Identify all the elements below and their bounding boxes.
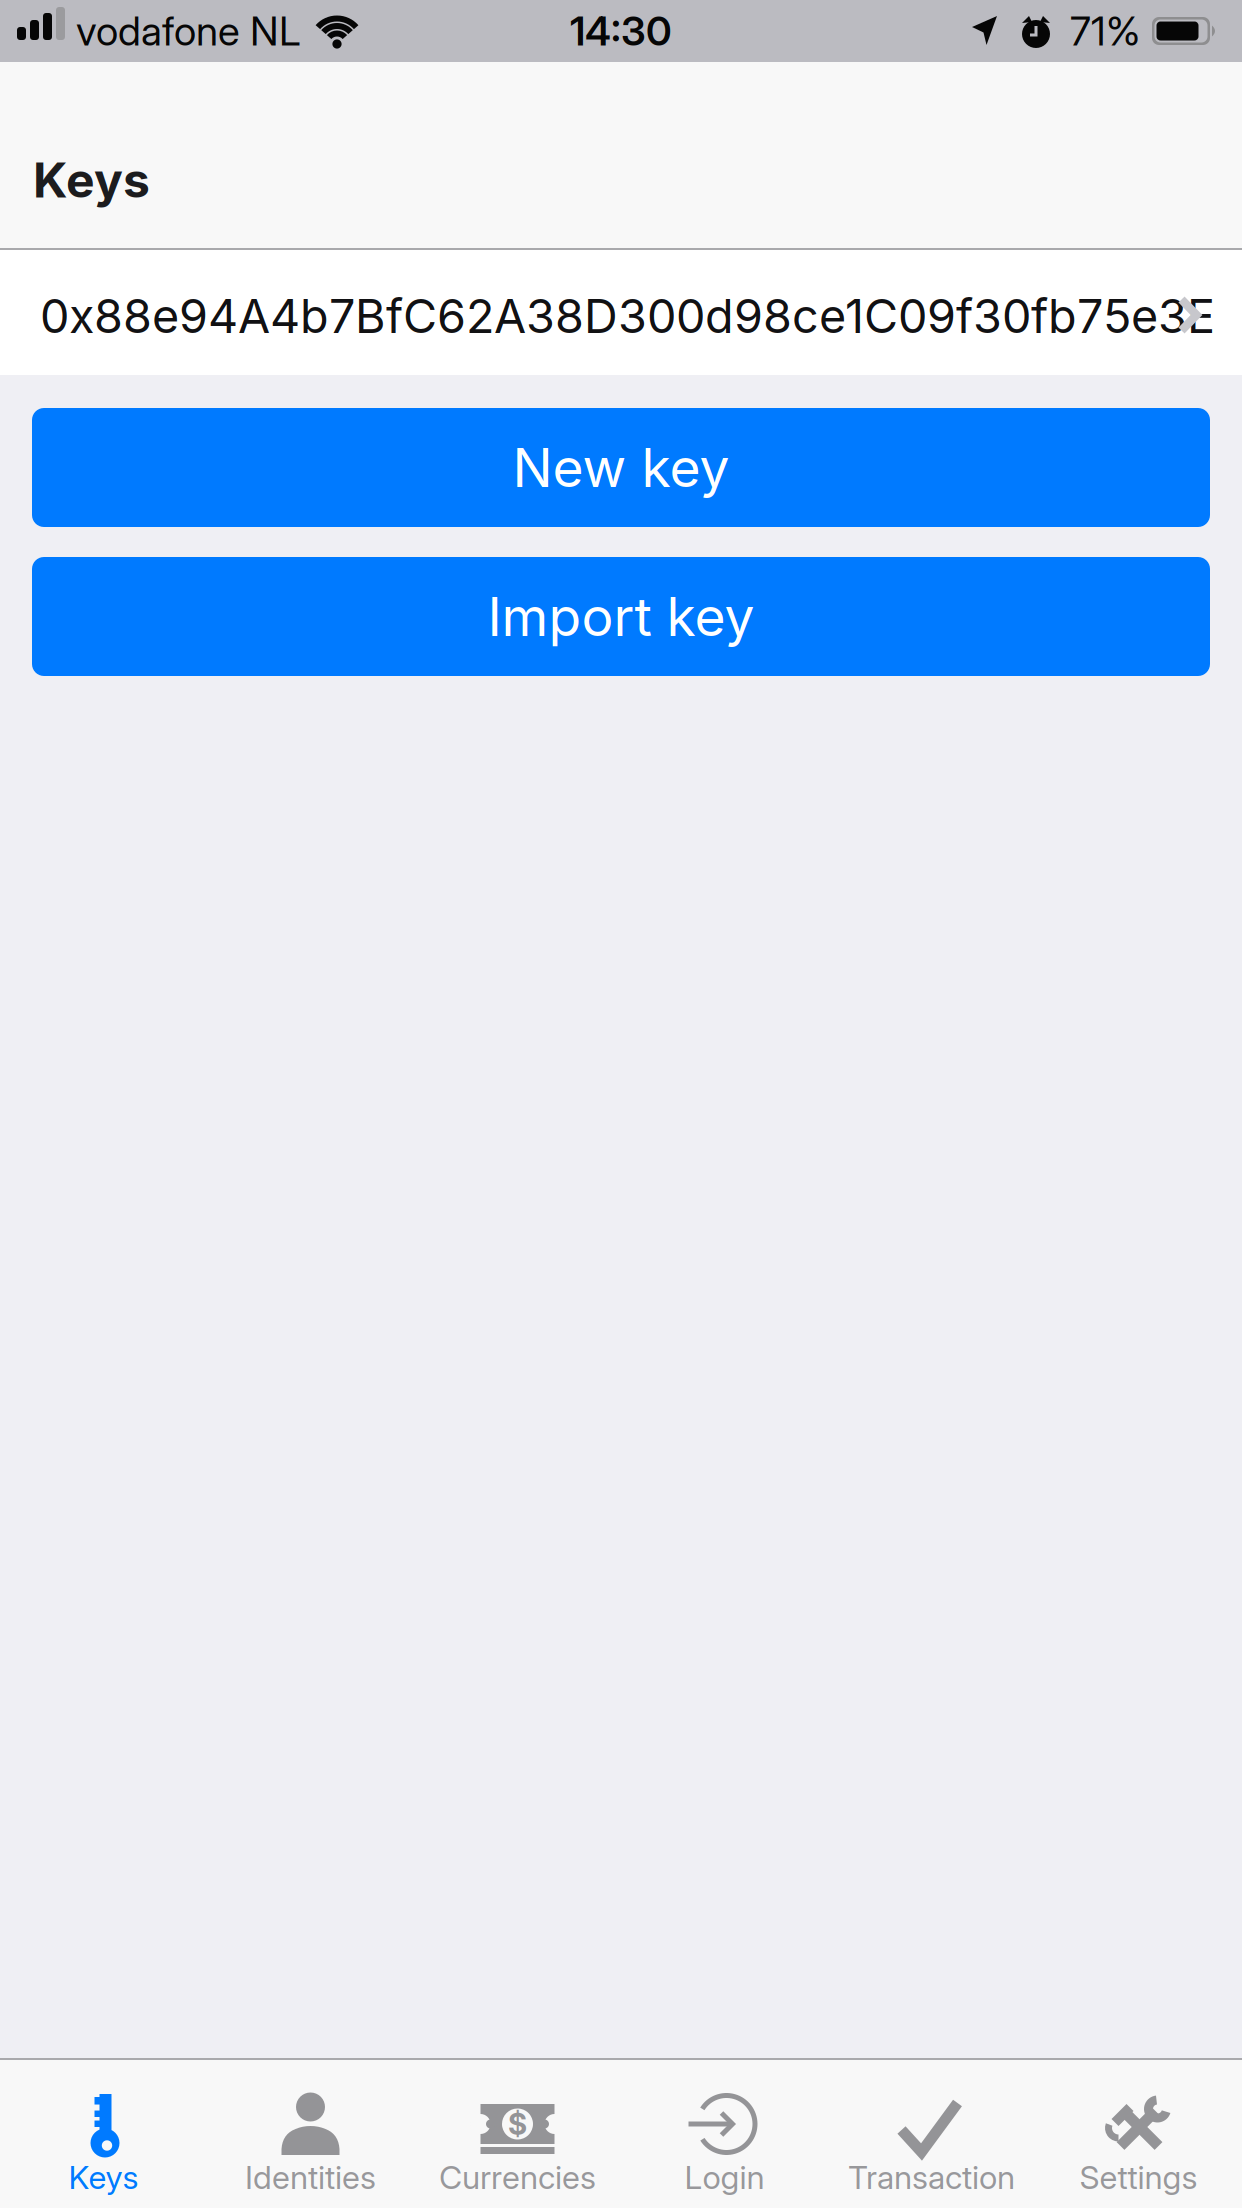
button[interactable]: Keys bbox=[0, 2060, 207, 2208]
button[interactable]: New key bbox=[32, 408, 1210, 527]
staticText: 71% bbox=[1070, 7, 1140, 55]
button[interactable]: Identities bbox=[207, 2060, 414, 2208]
staticText: Import key bbox=[487, 584, 754, 649]
button[interactable]: Transaction bbox=[828, 2060, 1035, 2208]
button[interactable]: 0x88e94A4b7BfC62A38D300d98ce1C09f30fb75e… bbox=[0, 284, 1242, 341]
staticText: vodafone NL bbox=[76, 7, 301, 55]
staticText: 0x88e94A4b7BfC62A38D300d98ce1C09f30fb75e… bbox=[40, 288, 1215, 344]
staticText: 14:30 bbox=[570, 7, 672, 55]
button[interactable]: Settings bbox=[1035, 2060, 1242, 2208]
button[interactable]: Import key bbox=[32, 557, 1210, 676]
staticText: Transaction bbox=[848, 2158, 1015, 2197]
button[interactable]: $ bbox=[414, 2060, 621, 2208]
staticText: Currencies bbox=[439, 2158, 596, 2197]
staticText: Keys bbox=[68, 2158, 138, 2197]
staticText: Identities bbox=[245, 2158, 376, 2197]
button[interactable]: Login bbox=[621, 2060, 828, 2208]
staticText: Keys bbox=[33, 151, 150, 209]
staticText: Settings bbox=[1079, 2158, 1197, 2197]
staticText: New key bbox=[512, 435, 729, 500]
staticText: $ bbox=[508, 2106, 527, 2142]
staticText: Login bbox=[684, 2158, 764, 2197]
